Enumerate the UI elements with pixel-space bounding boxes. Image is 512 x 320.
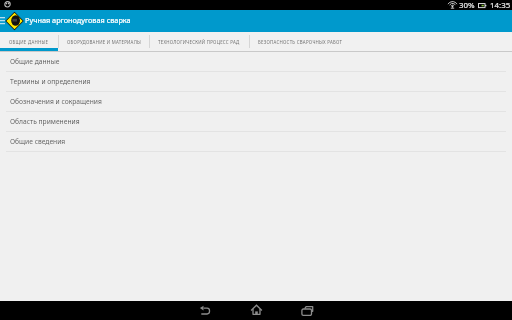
button[interactable]: Home [231, 301, 282, 320]
staticText: ОБЩИЕ ДАННЫЕ [9, 39, 49, 45]
staticText: ТЕХНОЛОГИЧЕСКИЙ ПРОЦЕСС РАД [158, 39, 240, 45]
staticText: Область применения [10, 117, 80, 126]
staticText: Общие сведения [10, 137, 66, 146]
staticText: БЕЗОПАСНОСТЬ СВАРОЧНЫХ РАБОТ [258, 39, 343, 45]
button[interactable]: ТЕХНОЛОГИЧЕСКИЙ ПРОЦЕСС РАД [149, 32, 249, 51]
button[interactable]: Область применения [0, 112, 512, 131]
staticText: Ручная аргонодуговая сварка [25, 15, 131, 25]
button[interactable]: ОБЩИЕ ДАННЫЕ [0, 32, 58, 51]
button[interactable]: БЕЗОПАСНОСТЬ СВАРОЧНЫХ РАБОТ [249, 32, 351, 51]
staticText: Обозначения и сокращения [10, 97, 102, 106]
button[interactable]: Back [180, 301, 231, 320]
staticText: 14:35 [490, 0, 511, 10]
button[interactable]: Общие сведения [0, 132, 512, 151]
staticText: ОБОРУДОВАНИЕ И МАТЕРИАЛЫ [67, 39, 141, 45]
button[interactable]: Общие данные [0, 52, 512, 71]
staticText: Общие данные [10, 57, 60, 66]
button[interactable]: Recent apps [282, 301, 333, 320]
staticText: 30% [459, 0, 475, 10]
button[interactable]: Open navigation drawer [0, 10, 5, 32]
button[interactable]: Термины и определения [0, 72, 512, 91]
button[interactable]: ОБОРУДОВАНИЕ И МАТЕРИАЛЫ [58, 32, 149, 51]
button[interactable]: Обозначения и сокращения [0, 92, 512, 111]
staticText: Термины и определения [10, 77, 91, 86]
